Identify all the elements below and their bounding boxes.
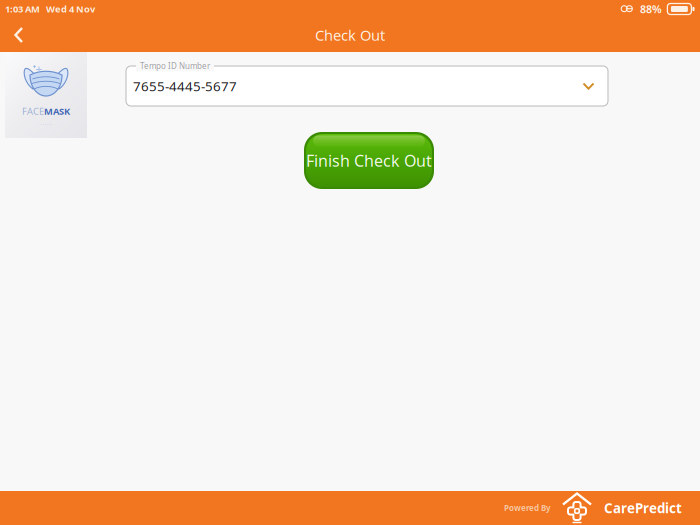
staticText: FACE <box>22 105 44 117</box>
staticText: 7655-4445-5677 <box>133 77 237 95</box>
staticText: Tempo ID Number <box>140 61 210 71</box>
staticText: 1:03 AM <box>5 3 40 15</box>
button[interactable]: 7655-4445-5677 <box>126 66 608 106</box>
staticText: Check Out <box>315 25 385 45</box>
staticText: · · · · · · <box>40 120 51 127</box>
staticText: 88% <box>640 2 662 16</box>
staticText: MASK <box>44 105 70 117</box>
staticText: CarePredict <box>604 499 682 517</box>
button[interactable]: Back <box>0 19 38 51</box>
button[interactable]: Finish Check Out <box>304 132 434 189</box>
staticText: Finish Check Out <box>306 150 432 171</box>
staticText: Powered By <box>504 503 551 513</box>
staticText: Wed 4 Nov <box>46 3 95 15</box>
